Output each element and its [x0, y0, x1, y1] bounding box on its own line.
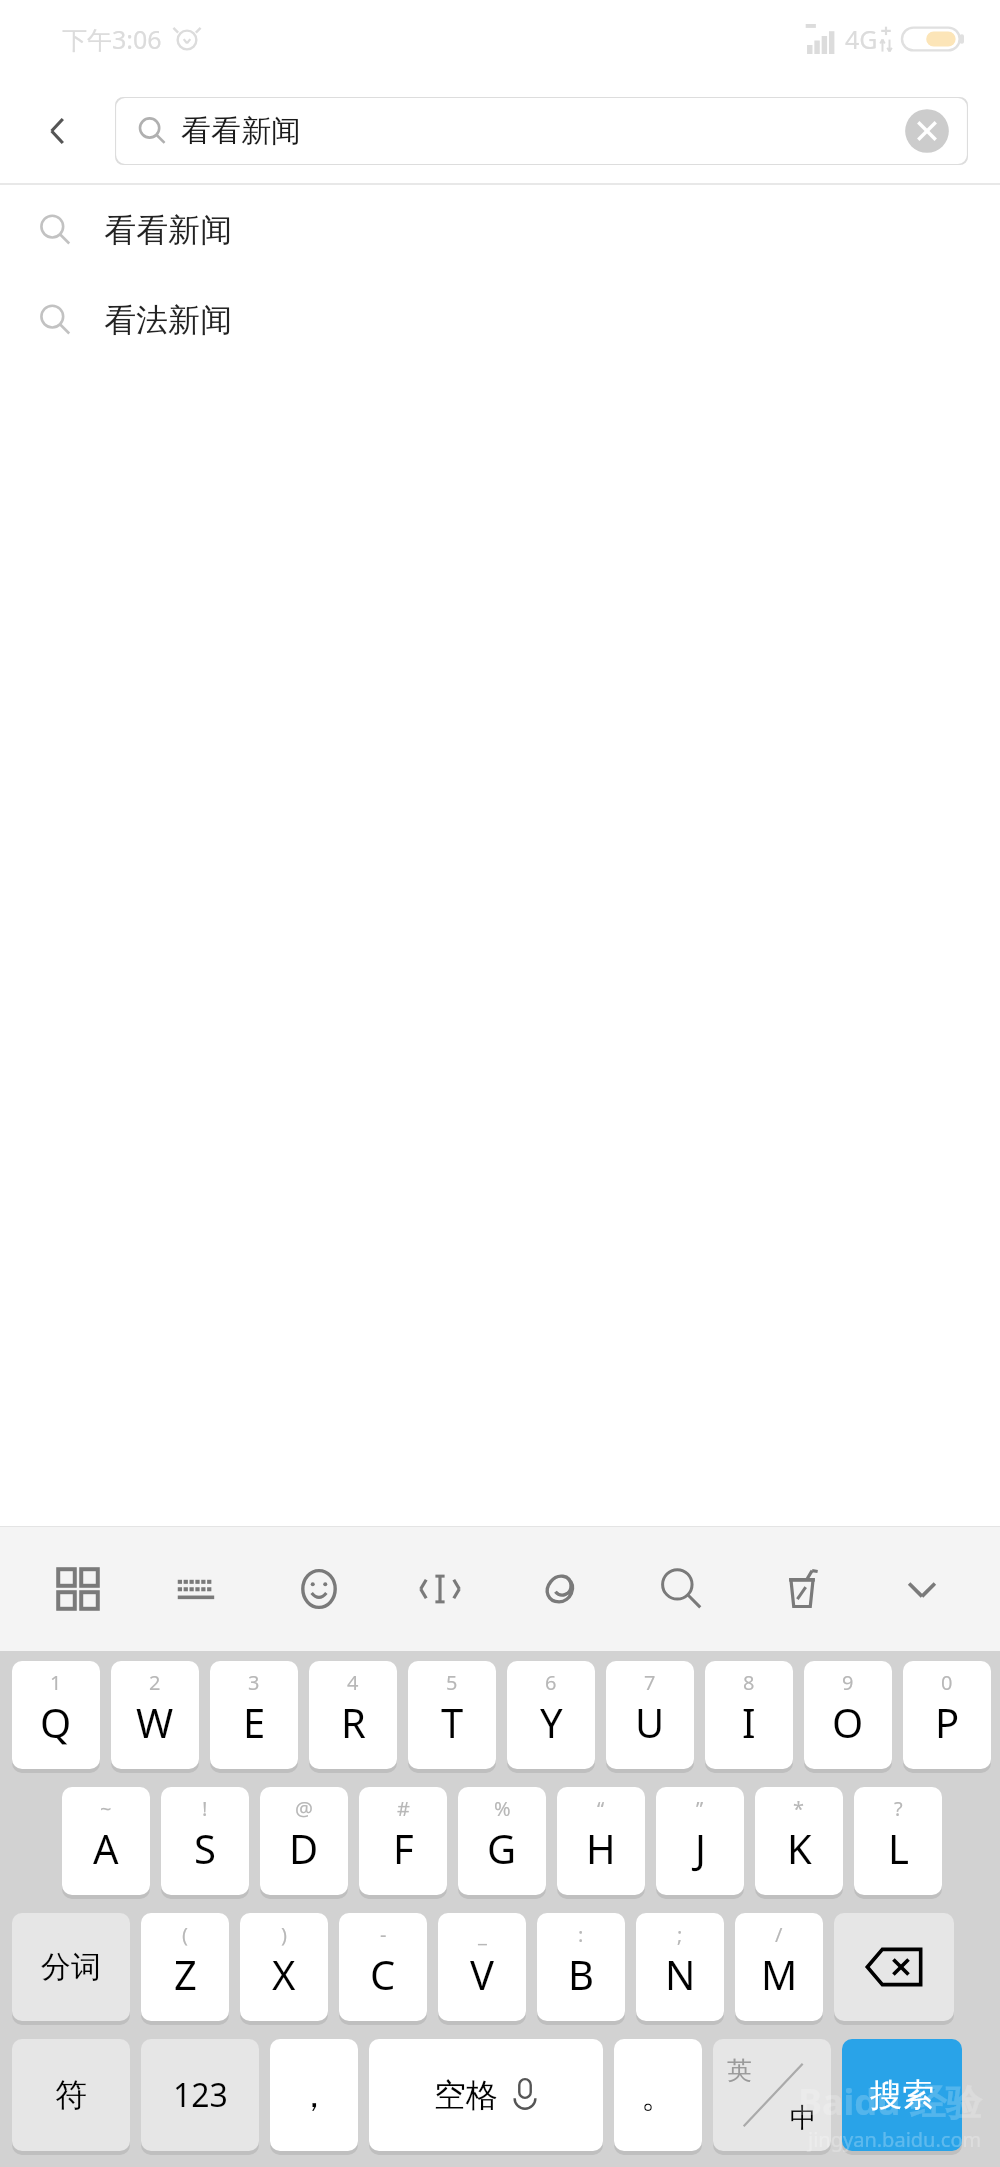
staticText: S: [194, 1821, 216, 1875]
button[interactable]: 1: [12, 1661, 100, 1769]
staticText: ): [281, 1921, 287, 1948]
button[interactable]: ;: [636, 1913, 724, 2021]
button[interactable]: 8: [705, 1661, 793, 1769]
button[interactable]: ~: [62, 1787, 150, 1895]
staticText: 0: [941, 1669, 953, 1696]
staticText: W: [136, 1695, 174, 1749]
button[interactable]: 6: [507, 1661, 595, 1769]
staticText: 1: [50, 1669, 62, 1696]
staticText: A: [93, 1821, 119, 1875]
button[interactable]: 5: [408, 1661, 496, 1769]
staticText: 5: [446, 1669, 458, 1696]
button[interactable]: -: [339, 1913, 427, 2021]
staticText: ?: [894, 1795, 903, 1822]
staticText: K: [787, 1821, 812, 1875]
staticText: Z: [174, 1947, 197, 2001]
staticText: M: [761, 1947, 798, 2001]
staticText: 4: [347, 1669, 359, 1696]
button[interactable]: Text select: [397, 1546, 483, 1632]
button[interactable]: Clear: [759, 1546, 845, 1632]
staticText: 搜索: [870, 2075, 934, 2115]
button[interactable]: %: [458, 1787, 546, 1895]
button[interactable]: 英: [713, 2039, 831, 2151]
button[interactable]: 看法新闻: [0, 275, 1000, 365]
staticText: 下午3:06: [62, 22, 162, 56]
staticText: 123: [173, 2073, 228, 2117]
staticText: @: [295, 1795, 313, 1822]
button[interactable]: 搜索: [842, 2039, 962, 2151]
button[interactable]: :: [537, 1913, 625, 2021]
button[interactable]: Emoji: [276, 1546, 362, 1632]
staticText: %: [494, 1795, 511, 1822]
staticText: 3: [248, 1669, 260, 1696]
staticText: Y: [540, 1695, 563, 1749]
staticText: Baidu 经验: [798, 2077, 982, 2126]
button[interactable]: ?: [854, 1787, 942, 1895]
button[interactable]: /: [735, 1913, 823, 2021]
button[interactable]: [834, 1913, 954, 2021]
button[interactable]: Hide keyboard: [879, 1546, 965, 1632]
button[interactable]: ): [240, 1913, 328, 2021]
staticText: 4G: [845, 22, 878, 56]
button[interactable]: (: [141, 1913, 229, 2021]
button[interactable]: @: [260, 1787, 348, 1895]
staticText: 7: [644, 1669, 656, 1696]
button[interactable]: 符: [12, 2039, 130, 2151]
button[interactable]: *: [755, 1787, 843, 1895]
button[interactable]: 分词: [12, 1913, 130, 2021]
staticText: *: [793, 1795, 805, 1822]
staticText: O: [832, 1695, 864, 1749]
button[interactable]: ，: [270, 2039, 358, 2151]
staticText: X: [272, 1947, 296, 2001]
button[interactable]: #: [359, 1787, 447, 1895]
staticText: 空格: [434, 2075, 498, 2115]
staticText: B: [568, 1947, 594, 2001]
staticText: J: [695, 1821, 706, 1875]
staticText: F: [393, 1821, 414, 1875]
staticText: “: [597, 1795, 605, 1822]
staticText: C: [370, 1947, 396, 2001]
button[interactable]: 123: [141, 2039, 259, 2151]
button[interactable]: 。: [614, 2039, 702, 2151]
button[interactable]: 0: [903, 1661, 991, 1769]
staticText: P: [935, 1695, 960, 1749]
staticText: R: [341, 1695, 366, 1749]
staticText: ~: [100, 1795, 112, 1822]
button[interactable]: _: [438, 1913, 526, 2021]
staticText: 英: [727, 2055, 752, 2086]
button[interactable]: Back: [0, 78, 115, 183]
button[interactable]: Search: [638, 1546, 724, 1632]
staticText: 符: [55, 2075, 87, 2115]
button[interactable]: Attach: [517, 1546, 603, 1632]
button[interactable]: !: [161, 1787, 249, 1895]
button[interactable]: 空格: [369, 2039, 603, 2151]
staticText: T: [441, 1695, 464, 1749]
button[interactable]: 3: [210, 1661, 298, 1769]
button[interactable]: 2: [111, 1661, 199, 1769]
staticText: /: [775, 1921, 783, 1948]
button[interactable]: 9: [804, 1661, 892, 1769]
other: Backspace: [834, 1913, 954, 2025]
staticText: D: [289, 1821, 319, 1875]
button[interactable]: 4: [309, 1661, 397, 1769]
staticText: ，: [297, 2074, 331, 2117]
staticText: 看看新闻: [181, 112, 301, 150]
staticText: H: [586, 1821, 616, 1875]
button[interactable]: Clear: [904, 108, 950, 154]
button[interactable]: 7: [606, 1661, 694, 1769]
button[interactable]: 看看新闻: [115, 97, 968, 165]
staticText: 2: [149, 1669, 161, 1696]
staticText: 8: [743, 1669, 755, 1696]
button[interactable]: ”: [656, 1787, 744, 1895]
staticText: 中: [790, 2101, 817, 2135]
button[interactable]: 看看新闻: [0, 185, 1000, 275]
staticText: E: [243, 1695, 266, 1749]
staticText: 看看新闻: [104, 210, 232, 250]
staticText: 分词: [41, 1948, 101, 1986]
staticText: jingyan.baidu.com: [808, 2126, 982, 2153]
button[interactable]: Keyboard layout: [155, 1546, 241, 1632]
button[interactable]: “: [557, 1787, 645, 1895]
staticText: N: [665, 1947, 696, 2001]
button[interactable]: Panels: [35, 1546, 121, 1632]
staticText: (: [182, 1921, 188, 1948]
